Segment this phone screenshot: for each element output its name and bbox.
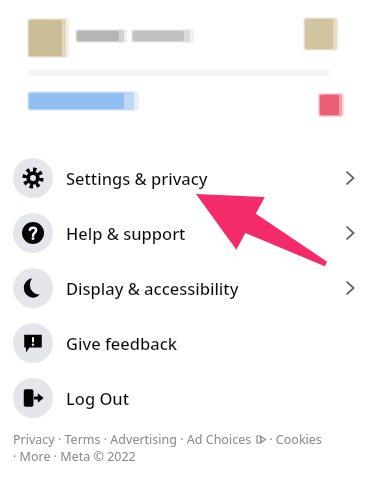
- button[interactable]: Display & accessibility: [0, 260, 376, 315]
- staticText: · Cookies: [266, 431, 322, 448]
- staticText: Privacy · Terms · Advertising · Ad Choic…: [13, 431, 255, 448]
- button[interactable]: Log Out: [0, 370, 376, 425]
- button[interactable]: Help & support: [0, 205, 376, 260]
- staticText: Help & support: [66, 222, 186, 244]
- staticText: Log Out: [66, 387, 130, 409]
- staticText: · More · Meta © 2022: [13, 448, 136, 465]
- staticText: Give feedback: [66, 332, 177, 354]
- button[interactable]: Give feedback: [0, 315, 376, 370]
- staticText: Settings & privacy: [66, 167, 208, 189]
- staticText: Display & accessibility: [66, 277, 239, 299]
- button[interactable]: Settings & privacy: [0, 150, 376, 205]
- button[interactable]: [13, 8, 363, 131]
